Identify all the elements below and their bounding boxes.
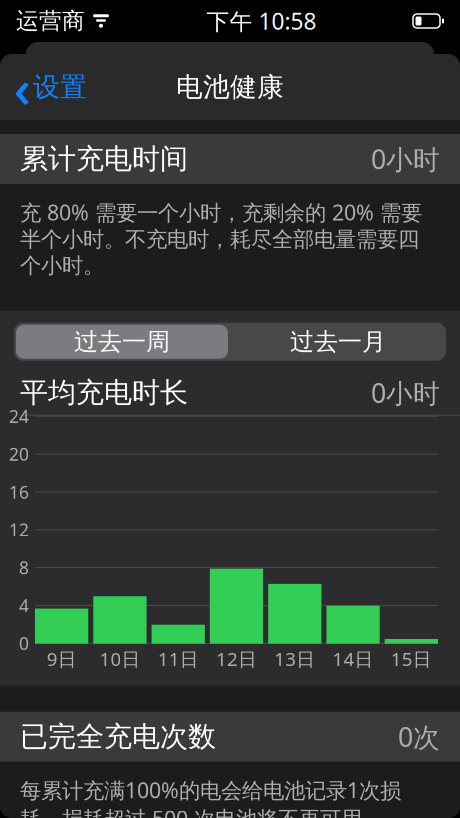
staticText: 11日 (158, 646, 199, 671)
staticText: 累计充电时间 (20, 142, 188, 176)
staticText: 9日 (47, 646, 77, 671)
staticText: 已完全充电次数 (20, 719, 216, 754)
staticText: 下午 10:58 (206, 6, 316, 36)
staticText: 0 (19, 632, 29, 655)
staticText: 设置 (33, 71, 87, 103)
staticText: 12 (9, 518, 29, 541)
button[interactable]: 已完全充电次数 (0, 712, 460, 762)
staticText: 0小时 (371, 141, 440, 177)
button[interactable]: 过去一月 (230, 323, 446, 361)
staticText: 运营商 (16, 7, 85, 35)
button[interactable]: 累计充电时间 (0, 134, 460, 184)
button[interactable]: ‹ (0, 61, 101, 113)
staticText: 过去一周 (74, 327, 170, 356)
button[interactable]: 过去一周 (14, 323, 230, 361)
staticText: 充 80% 需要一个小时，充剩余的 20% 需要半个小时。不充电时，耗尽全部电量… (20, 198, 422, 279)
staticText: 每累计充满100%的电会给电池记录1次损耗，损耗超过 500 次电池将不再可用。 (20, 776, 401, 818)
staticText: 24 (9, 405, 29, 428)
staticText: 电池健康 (176, 71, 284, 103)
staticText: 20 (9, 443, 29, 466)
staticText: 10日 (99, 646, 140, 671)
staticText: 16 (9, 480, 29, 503)
staticText: 13日 (274, 646, 315, 671)
staticText: 14日 (333, 646, 374, 671)
staticText: 15日 (391, 646, 432, 671)
staticText: 0小时 (371, 375, 440, 410)
staticText: 过去一月 (290, 327, 386, 356)
staticText: 8 (19, 556, 29, 579)
staticText: ‹ (13, 52, 30, 122)
staticText: 4 (19, 594, 29, 617)
staticText: 0次 (398, 719, 440, 754)
staticText: 平均充电时长 (20, 375, 188, 410)
staticText: 12日 (216, 646, 257, 671)
